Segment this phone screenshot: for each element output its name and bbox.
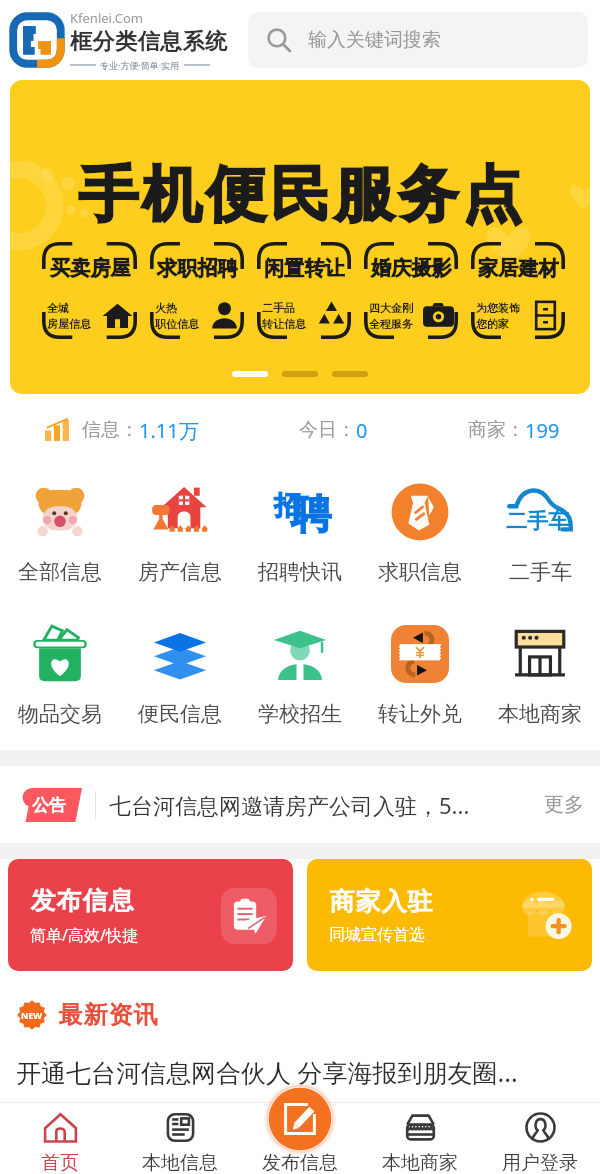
staticText: 本地商家 bbox=[382, 1151, 458, 1174]
staticText: 商家： bbox=[468, 418, 525, 442]
staticText: 199 bbox=[525, 417, 560, 444]
staticText: 转让外兑 bbox=[378, 701, 462, 727]
staticText: 发布信息 bbox=[30, 885, 134, 916]
staticText: 全城 bbox=[47, 301, 69, 315]
staticText: 转让信息 bbox=[262, 317, 306, 331]
staticText: 学校招生 bbox=[258, 701, 342, 727]
staticText: 便民信息 bbox=[138, 701, 222, 727]
staticText: 物品交易 bbox=[18, 701, 102, 727]
button[interactable]: 便民信息 bbox=[120, 608, 240, 750]
staticText: 输入关键词搜索 bbox=[308, 28, 441, 52]
staticText: 婚庆摄影 bbox=[371, 256, 452, 281]
staticText: 公告 bbox=[32, 795, 66, 816]
staticText: 求职信息 bbox=[378, 559, 462, 585]
button[interactable]: 本地商家 bbox=[480, 608, 600, 750]
button[interactable]: 求职信息 bbox=[360, 466, 480, 608]
staticText: 用户登录 bbox=[502, 1151, 578, 1174]
button[interactable]: 全部信息 bbox=[0, 466, 120, 608]
staticText: 手机便民服务点 bbox=[76, 157, 524, 233]
staticText: 信息： bbox=[82, 418, 139, 442]
staticText: 房产信息 bbox=[138, 559, 222, 585]
staticText: 本地商家 bbox=[498, 701, 582, 727]
button[interactable]: 学校招生 bbox=[240, 608, 360, 750]
staticText: 全程服务 bbox=[369, 317, 413, 331]
staticText: 首页 bbox=[41, 1151, 79, 1174]
button[interactable]: 物品交易 bbox=[0, 608, 120, 750]
staticText: 0 bbox=[356, 417, 368, 444]
staticText: 框分类信息系统 bbox=[70, 28, 228, 56]
staticText: 专业·方便·简单·实用 bbox=[100, 59, 180, 71]
staticText: 更多 bbox=[544, 792, 584, 817]
staticText: 最新资讯 bbox=[58, 1000, 158, 1030]
staticText: 买卖房屋 bbox=[50, 256, 131, 281]
button[interactable]: 发布信息 bbox=[261, 1083, 339, 1155]
button[interactable]: 发布信息 bbox=[8, 859, 293, 971]
button[interactable]: 招 bbox=[240, 466, 360, 608]
staticText: 同城宣传首选 bbox=[329, 925, 425, 945]
staticText: 二手车 bbox=[509, 559, 572, 585]
staticText: 七台河信息网邀请房产公司入驻，5... bbox=[109, 790, 536, 820]
button[interactable]: 转让外兑 bbox=[360, 608, 480, 750]
staticText: 职位信息 bbox=[155, 317, 199, 331]
staticText: Kfenlei.Com bbox=[70, 9, 143, 27]
button[interactable]: 用户登录 bbox=[480, 1103, 600, 1174]
staticText: 本地信息 bbox=[142, 1151, 218, 1174]
staticText: 二手品 bbox=[262, 301, 295, 315]
button[interactable]: 首页 bbox=[0, 1103, 120, 1174]
staticText: 商家入驻 bbox=[329, 886, 433, 917]
staticText: 今日： bbox=[299, 418, 356, 442]
staticText: 求职招聘 bbox=[157, 256, 238, 281]
staticText: 四大金刚 bbox=[369, 301, 413, 315]
staticText: 招 bbox=[274, 489, 301, 523]
staticText: 家居建材 bbox=[478, 256, 559, 281]
button[interactable]: 发布信息 bbox=[240, 1103, 360, 1174]
staticText: 全部信息 bbox=[18, 559, 102, 585]
staticText: 您的家 bbox=[476, 317, 509, 331]
staticText: 聘 bbox=[291, 489, 331, 539]
staticText: 1.11万 bbox=[139, 417, 199, 444]
staticText: 闲置转让 bbox=[264, 256, 345, 281]
button[interactable]: 本地商家 bbox=[360, 1103, 480, 1174]
staticText: 房屋信息 bbox=[47, 317, 91, 331]
button[interactable]: 商家入驻 bbox=[307, 859, 592, 971]
staticText: 招聘快讯 bbox=[258, 559, 342, 585]
button[interactable]: 输入关键词搜索 bbox=[248, 12, 588, 68]
button[interactable]: 房产信息 bbox=[120, 466, 240, 608]
button[interactable]: 二手车 bbox=[480, 466, 600, 608]
staticText: 火热 bbox=[155, 301, 177, 315]
staticText: NEW bbox=[21, 1009, 43, 1021]
staticText: 开通七台河信息网合伙人 分享海报到朋友圈... bbox=[16, 1055, 518, 1089]
button[interactable]: 手机便民服务点 bbox=[10, 80, 590, 394]
staticText: 为您装饰 bbox=[476, 301, 520, 315]
staticText: 二手车 bbox=[506, 508, 569, 534]
button[interactable]: 公告 bbox=[0, 766, 600, 843]
button[interactable]: 本地信息 bbox=[120, 1103, 240, 1174]
staticText: 简单/高效/快捷 bbox=[30, 924, 138, 946]
staticText: 发布信息 bbox=[262, 1151, 338, 1174]
